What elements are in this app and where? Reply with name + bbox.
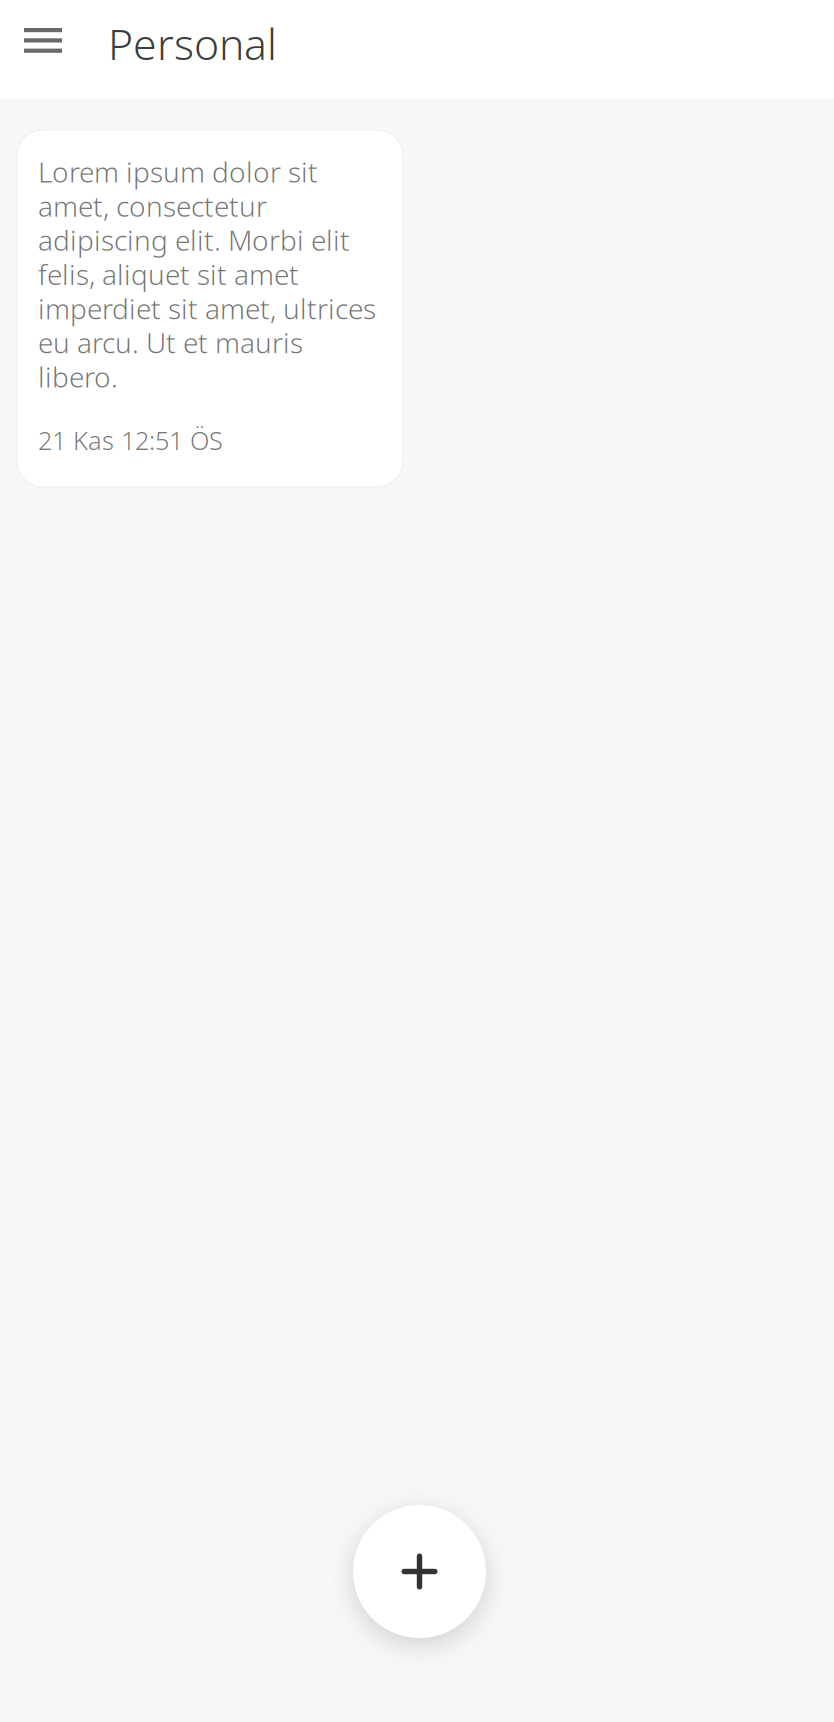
button[interactable]: Add note — [353, 1505, 486, 1638]
button[interactable]: Lorem ipsum dolor sit amet, consectetur … — [17, 130, 403, 487]
staticText: Personal — [108, 15, 277, 72]
staticText: 21 Kas 12:51 ÖS — [38, 423, 223, 457]
button[interactable]: Menu — [0, 0, 108, 99]
staticText: Lorem ipsum dolor sit amet, consectetur … — [38, 153, 376, 395]
